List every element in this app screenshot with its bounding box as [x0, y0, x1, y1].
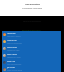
button[interactable]: Marcus Lee: [2, 38, 61, 45]
button[interactable]: Dana White: [2, 45, 61, 52]
staticText: Thanks for help: [7, 49, 20, 52]
button[interactable]: Team Alpha: [2, 52, 61, 59]
staticText: See you tomorrow: [7, 42, 22, 45]
staticText: Dana White: [7, 46, 17, 49]
staticText: Marcus Lee: [7, 39, 17, 42]
staticText: Confidential Messaging: [22, 7, 42, 10]
staticText: Meeting at 10am: [7, 56, 21, 59]
staticText: Sent you a photo: [7, 35, 21, 38]
button[interactable]: Priya Nair: [2, 59, 61, 66]
staticText: End-to-end encrypted: [22, 29, 41, 31]
button[interactable]: Jon Snow: [2, 66, 61, 72]
staticText: Call me when free: [7, 63, 22, 66]
staticText: Jon Snow: [7, 66, 15, 69]
staticText: Fully Encrypted: [25, 3, 40, 6]
staticText: Secure conversations: [23, 20, 41, 23]
staticText: Team Alpha: [7, 53, 17, 56]
staticText: Okay sounds good: [7, 69, 22, 72]
staticText: Priya Nair: [7, 60, 15, 63]
staticText: Alicia Keys: [7, 32, 16, 35]
button[interactable]: Alicia Keys: [2, 31, 61, 38]
